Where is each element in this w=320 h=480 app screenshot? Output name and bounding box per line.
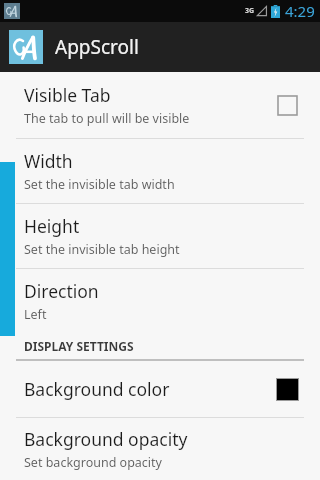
- staticText: Set the invisible tab height: [24, 241, 180, 258]
- staticText: Left: [24, 306, 47, 323]
- staticText: The tab to pull will be visible: [24, 110, 190, 127]
- staticText: DISPLAY SETTINGS: [24, 338, 134, 354]
- button[interactable]: Background color: [0, 361, 320, 417]
- staticText: 4:29: [285, 1, 315, 21]
- button[interactable]: Width: [0, 139, 320, 203]
- staticText: 3G: [245, 6, 255, 16]
- staticText: Visible Tab: [24, 83, 111, 107]
- button[interactable]: Height: [0, 204, 320, 268]
- staticText: Set background opacity: [24, 454, 162, 471]
- staticText: Set the invisible tab width: [24, 176, 175, 193]
- staticText: Direction: [24, 279, 99, 303]
- button[interactable]: Visible Tab: [0, 72, 320, 138]
- button[interactable]: Pick background color: [270, 372, 304, 406]
- staticText: Height: [24, 214, 80, 238]
- staticText: Background opacity: [24, 427, 188, 451]
- button[interactable]: Direction: [0, 269, 320, 333]
- button[interactable]: AppScroll: [0, 22, 320, 72]
- staticText: Width: [24, 149, 73, 173]
- button[interactable]: Background opacity: [0, 418, 320, 480]
- button[interactable]: Visible Tab toggle: [270, 88, 304, 122]
- staticText: Background color: [24, 377, 170, 401]
- staticText: AppScroll: [55, 34, 139, 60]
